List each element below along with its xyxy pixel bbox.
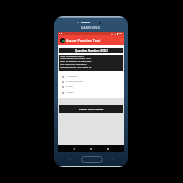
staticText: SAMSUNG [81, 25, 101, 30]
button[interactable]: B. Small Business [58, 79, 124, 84]
staticText: D. Basic [66, 91, 74, 94]
staticText: B. Small Business [66, 80, 84, 83]
button[interactable]: D. Basic [58, 90, 124, 95]
button[interactable]: Back [70, 145, 77, 152]
staticText: Your company has a subscription to Azure… [60, 54, 96, 69]
staticText: SUBMIT YOUR ANSWER [79, 108, 104, 111]
staticText: A. Standard [66, 75, 78, 78]
button[interactable]: C. Free [58, 84, 124, 89]
staticText: 34% [118, 32, 123, 35]
button[interactable]: SUBMIT YOUR ANSWER [59, 105, 123, 113]
staticText: Azure Practice Test [66, 38, 101, 43]
button[interactable]: More options [119, 35, 124, 45]
staticText: Question Number: 8/302 [75, 49, 108, 53]
button[interactable]: Home [87, 145, 94, 152]
button[interactable]: Recents [104, 145, 111, 152]
button[interactable]: A. Standard [58, 74, 124, 79]
staticText: C. Free [66, 85, 73, 88]
